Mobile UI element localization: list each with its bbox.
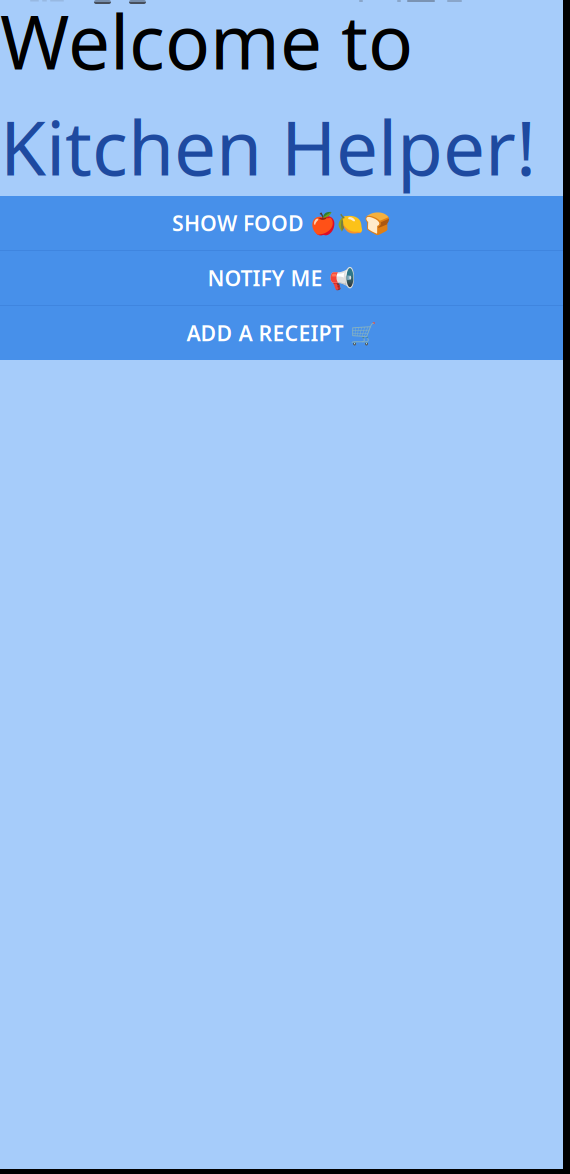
- staticText: SHOW FOOD 🍎🍋🍞: [172, 209, 391, 237]
- staticText: ADD A RECEIPT 🛒: [186, 319, 376, 347]
- button[interactable]: SHOW FOOD 🍎🍋🍞: [0, 196, 563, 250]
- staticText: Welcome to: [0, 0, 413, 90]
- staticText: Kitchen Helper!: [0, 97, 536, 196]
- staticText: NOTIFY ME 📢: [207, 264, 355, 292]
- button[interactable]: ADD A RECEIPT 🛒: [0, 306, 563, 360]
- button[interactable]: NOTIFY ME 📢: [0, 251, 563, 305]
